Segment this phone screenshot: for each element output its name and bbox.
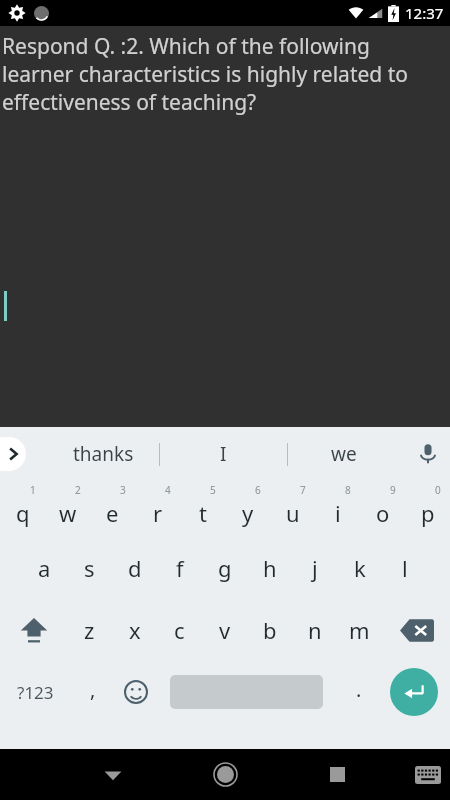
staticText: a [38,553,51,583]
staticText: m [349,615,370,645]
staticText: z [84,615,95,645]
staticText: g [218,553,232,583]
button[interactable]: f [157,537,202,599]
button[interactable]: b [247,599,292,661]
button[interactable]: Backspace [383,599,450,661]
staticText: t [199,498,207,528]
staticText: 7 [300,483,306,497]
staticText: thanks [73,441,134,467]
button[interactable]: Respond Q. :2. Which of the following le… [0,26,450,427]
button[interactable]: e [90,481,135,537]
staticText: 5 [210,483,216,497]
button[interactable]: , [70,661,115,723]
staticText: r [153,498,163,528]
staticText: 0 [435,483,441,497]
button[interactable]: q [0,481,45,537]
button[interactable]: s [67,537,112,599]
staticText: k [354,553,366,583]
button[interactable]: z [67,599,112,661]
staticText: f [176,553,184,583]
button[interactable]: d [112,537,157,599]
staticText: v [219,615,231,645]
button[interactable]: n [292,599,337,661]
button[interactable]: l [382,537,427,599]
button[interactable]: Hide keyboard [90,749,135,800]
button[interactable]: Change keyboard [405,749,450,800]
staticText: 12:37 [405,3,444,23]
staticText: 1 [30,483,36,497]
button[interactable]: y [225,481,270,537]
staticText: b [263,615,277,645]
button[interactable]: g [202,537,247,599]
staticText: d [128,553,142,583]
staticText: l [402,553,408,583]
staticText: c [174,615,185,645]
button[interactable]: Emoji [113,661,158,723]
button[interactable]: t [180,481,225,537]
button[interactable]: u [270,481,315,537]
staticText: 9 [390,483,396,497]
staticText: 4 [165,483,171,497]
staticText: u [286,498,300,528]
button[interactable]: j [292,537,337,599]
button[interactable]: a [22,537,67,599]
staticText: y [242,498,254,528]
staticText: 2 [75,483,81,497]
button[interactable]: Enter [390,668,438,716]
staticText: n [308,615,322,645]
button[interactable]: o [360,481,405,537]
button[interactable]: p [405,481,450,537]
staticText: w [59,498,77,528]
button[interactable]: Home [202,749,248,800]
staticText: I [220,441,227,467]
button[interactable]: ?123 [0,661,70,723]
button[interactable]: Voice input [406,432,450,476]
button[interactable]: i [315,481,360,537]
staticText: ?123 [17,681,54,704]
staticText: x [129,615,141,645]
button[interactable]: r [135,481,180,537]
button[interactable]: c [157,599,202,661]
button[interactable]: . [336,661,381,723]
button[interactable]: Recent apps [315,749,360,800]
button[interactable]: m [337,599,382,661]
staticText: we [331,441,357,467]
button[interactable]: we [299,427,389,481]
staticText: e [106,498,119,528]
staticText: Respond Q. :2. Which of the following le… [2,32,444,116]
staticText: o [376,498,390,528]
staticText: , [90,676,96,703]
staticText: 3 [120,483,126,497]
staticText: h [263,553,277,583]
button[interactable]: h [247,537,292,599]
button[interactable]: x [112,599,157,661]
button[interactable]: I [178,427,268,481]
staticText: 6 [255,483,261,497]
button[interactable]: thanks [58,427,148,481]
button[interactable]: Shift [0,599,67,661]
button[interactable]: k [337,537,382,599]
button[interactable]: w [45,481,90,537]
staticText: 8 [345,483,351,497]
button[interactable]: Expand suggestions [0,437,26,471]
staticText: p [421,498,435,528]
staticText: j [312,553,318,583]
staticText: q [16,498,30,528]
staticText: s [84,553,95,583]
staticText: i [335,498,341,528]
button[interactable]: v [202,599,247,661]
staticText: . [356,676,362,703]
